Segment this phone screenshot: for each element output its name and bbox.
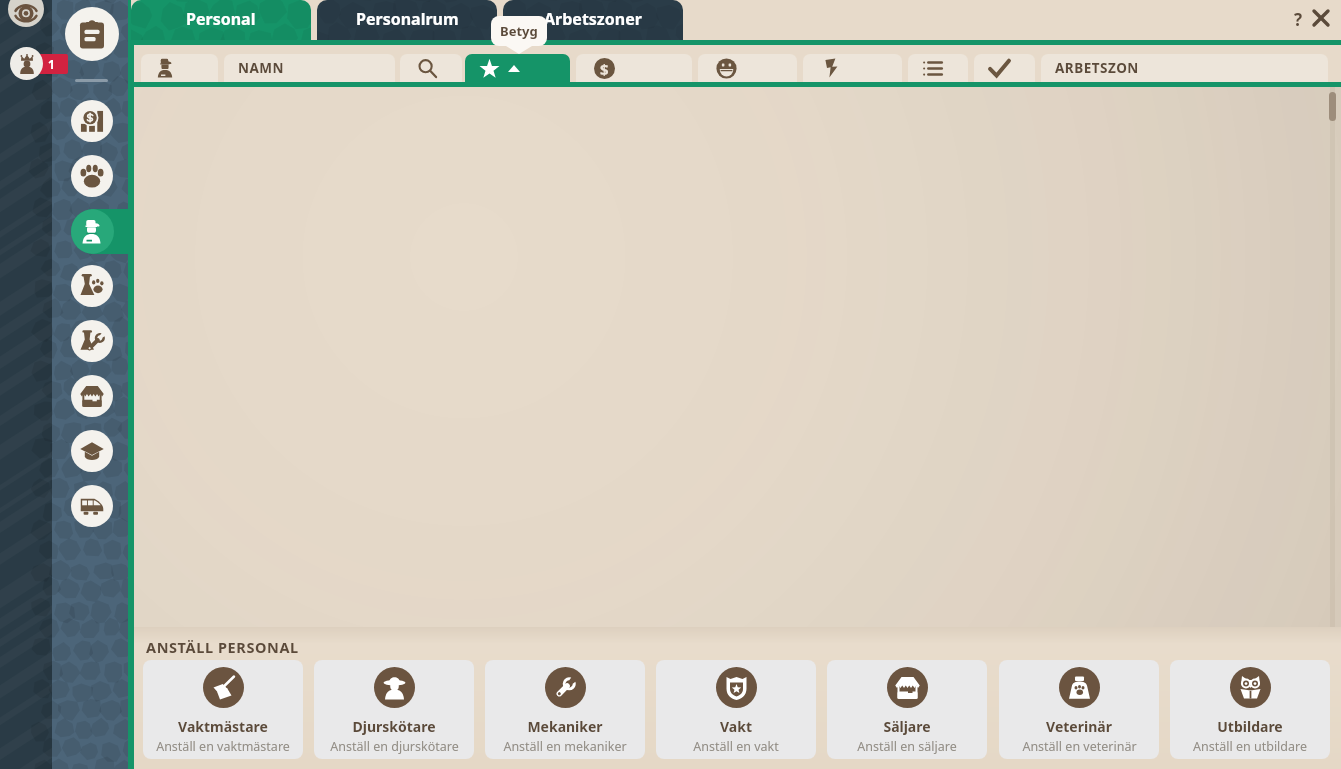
button[interactable]: Status <box>974 54 1035 82</box>
button[interactable]: Happiness <box>698 54 797 82</box>
button[interactable]: Rating <box>465 54 570 82</box>
staticText: Anställ en utbildare <box>1193 738 1307 755</box>
button[interactable]: Utbildare <box>1170 660 1330 759</box>
button[interactable]: Energy <box>803 54 902 82</box>
button[interactable]: Vaktmästare <box>143 660 303 759</box>
button[interactable]: Veterinär <box>999 660 1159 759</box>
staticText: ARBETSZON <box>1055 59 1139 77</box>
button[interactable]: Education <box>71 430 113 472</box>
staticText: Personalrum <box>356 8 459 30</box>
button[interactable]: Salary <box>576 54 692 82</box>
button[interactable]: Animals <box>71 155 113 197</box>
button[interactable]: Shops <box>71 375 113 417</box>
staticText: NAMN <box>238 59 285 77</box>
button[interactable]: Staff <box>71 209 131 254</box>
button[interactable]: NAMN <box>224 54 395 82</box>
button[interactable]: Help <box>1288 8 1308 28</box>
staticText: Vakt <box>720 717 752 736</box>
button[interactable]: Type <box>141 54 218 82</box>
staticText: Anställ en vaktmästare <box>156 738 290 755</box>
button[interactable]: Djurskötare <box>314 660 474 759</box>
button[interactable]: Management <box>65 7 119 61</box>
staticText: Djurskötare <box>352 717 436 736</box>
button[interactable]: Vakt <box>656 660 816 759</box>
button[interactable]: Search <box>400 54 462 82</box>
staticText: Anställ en mekaniker <box>503 738 627 755</box>
button[interactable]: Objectives <box>10 47 43 80</box>
staticText: Säljare <box>883 717 931 736</box>
button[interactable]: ARBETSZON <box>1041 54 1328 82</box>
button[interactable]: Personalrum <box>317 0 497 45</box>
staticText: Anställ en veterinär <box>1022 738 1137 755</box>
staticText: Vaktmästare <box>178 717 268 736</box>
button[interactable]: Säljare <box>827 660 987 759</box>
button[interactable]: Close <box>1311 8 1331 28</box>
button[interactable]: Finance <box>71 100 113 142</box>
button[interactable]: Transport <box>71 485 113 527</box>
staticText: 1 <box>48 56 55 72</box>
staticText: ANSTÄLL PERSONAL <box>146 637 299 657</box>
button[interactable]: Tasks <box>908 54 968 82</box>
staticText: Utbildare <box>1217 717 1283 736</box>
staticText: Anställ en säljare <box>857 738 957 755</box>
staticText: ? <box>1294 8 1303 28</box>
staticText: Betyg <box>500 22 538 40</box>
staticText: Mekaniker <box>527 717 603 736</box>
staticText: Arbetszoner <box>544 8 642 30</box>
staticText: Personal <box>186 8 256 30</box>
button[interactable]: Arbetszoner <box>503 0 683 45</box>
button[interactable]: Research <box>71 265 113 307</box>
staticText: Anställ en djurskötare <box>330 738 459 755</box>
staticText: Veterinär <box>1046 717 1112 736</box>
button[interactable]: Maintenance <box>71 320 113 362</box>
button[interactable]: Personal <box>131 0 311 45</box>
staticText: $ <box>600 59 609 79</box>
staticText: Anställ en vakt <box>693 738 779 755</box>
button[interactable]: Visibility <box>8 0 44 27</box>
button[interactable]: Mekaniker <box>485 660 645 759</box>
